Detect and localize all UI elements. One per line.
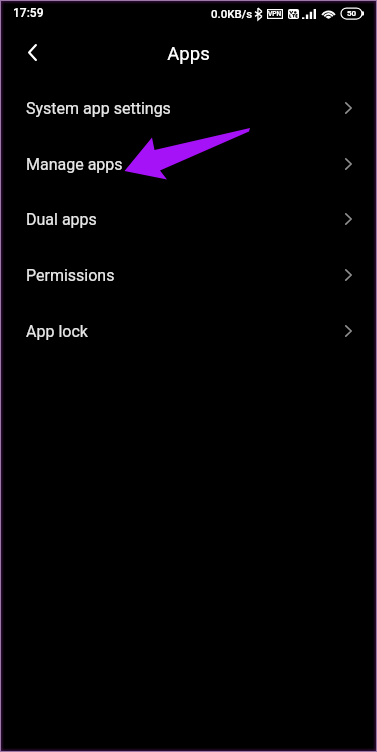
button[interactable]: App lock [0, 303, 377, 359]
staticText: App lock [26, 322, 88, 341]
staticText: 50 [347, 9, 357, 18]
staticText: System app settings [26, 99, 171, 118]
button[interactable]: Dual apps [0, 191, 377, 247]
button[interactable]: Permissions [0, 247, 377, 303]
staticText: Manage apps [26, 155, 123, 174]
staticText: Dual apps [26, 210, 97, 229]
button[interactable]: Back [9, 30, 56, 77]
staticText: 17:59 [13, 6, 44, 20]
button[interactable]: Manage apps [0, 136, 377, 192]
staticText: 0.0KB/s [211, 7, 253, 20]
staticText: VPN [268, 10, 282, 18]
button[interactable]: System app settings [0, 80, 377, 136]
staticText: Permissions [26, 266, 115, 285]
staticText: Apps [167, 43, 210, 65]
